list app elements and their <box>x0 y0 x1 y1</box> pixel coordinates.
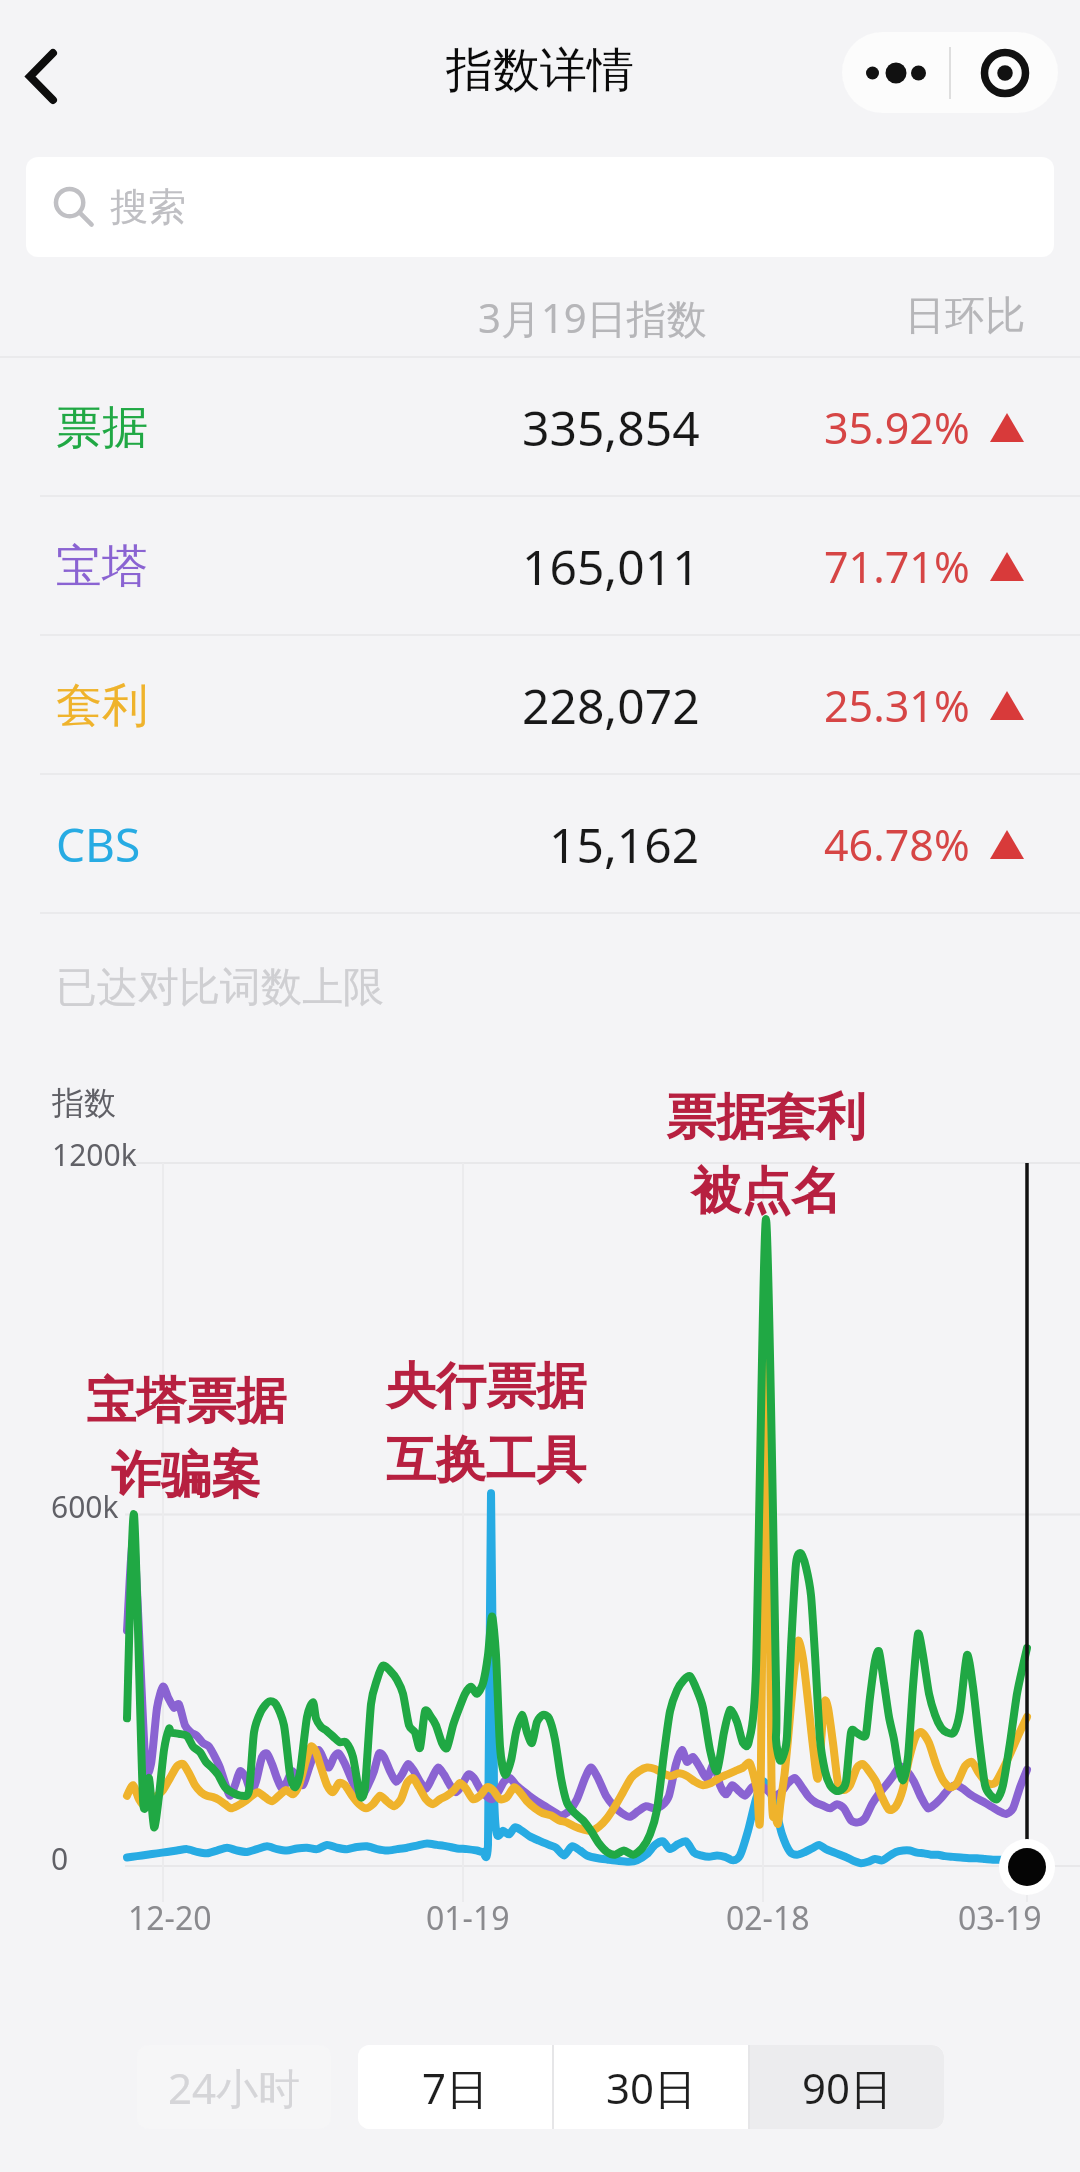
button[interactable]: More options <box>842 32 949 113</box>
staticText: 指数详情 <box>446 41 634 100</box>
staticText: 228,072 <box>522 673 700 738</box>
staticText: 24小时 <box>168 2059 301 2116</box>
staticText: 套利 <box>56 677 148 735</box>
staticText: 0 <box>51 1838 69 1879</box>
staticText: 日环比 <box>905 290 1025 340</box>
staticText: 3月19日指数 <box>478 290 707 345</box>
staticText: 03-19 <box>958 1896 1042 1940</box>
staticText: 35.92% <box>824 398 970 457</box>
staticText: 15,162 <box>549 812 700 877</box>
staticText: 已达对比词数上限 <box>56 962 384 1014</box>
staticText: 票据 <box>56 399 148 457</box>
staticText: 01-19 <box>426 1896 510 1940</box>
staticText: 宝塔 <box>56 538 148 596</box>
button[interactable]: CBS <box>0 775 1080 914</box>
staticText: 宝塔票据 诈骗案 <box>86 1370 286 1507</box>
button[interactable]: 票据 <box>0 358 1080 497</box>
button[interactable]: 7日 <box>358 2045 552 2129</box>
staticText: 25.31% <box>824 676 970 735</box>
staticText: 搜索 <box>110 183 186 231</box>
staticText: 指数 <box>52 1083 116 1123</box>
button[interactable]: Close mini program <box>951 32 1058 113</box>
staticText: 1200k <box>52 1134 137 1175</box>
button[interactable]: 搜索 <box>26 157 1054 257</box>
button[interactable]: 30日 <box>554 2045 748 2129</box>
staticText: 90日 <box>802 2059 893 2116</box>
staticText: 600k <box>51 1486 119 1527</box>
staticText: 票据套利 被点名 <box>666 1086 866 1223</box>
button[interactable]: 宝塔 <box>0 497 1080 636</box>
staticText: 30日 <box>606 2059 697 2116</box>
button[interactable]: 24小时 <box>137 2045 331 2129</box>
staticText: 02-18 <box>726 1896 810 1940</box>
button[interactable]: 套利 <box>0 636 1080 775</box>
staticText: 12-20 <box>128 1896 212 1940</box>
staticText: 7日 <box>422 2059 489 2116</box>
staticText: CBS <box>56 813 141 876</box>
staticText: 71.71% <box>824 537 970 596</box>
staticText: 央行票据 互换工具 <box>386 1355 586 1492</box>
button[interactable]: Back <box>0 20 96 132</box>
staticText: 165,011 <box>522 534 700 599</box>
button[interactable]: 90日 <box>750 2045 944 2129</box>
staticText: 46.78% <box>824 815 970 874</box>
staticText: 335,854 <box>522 395 700 460</box>
